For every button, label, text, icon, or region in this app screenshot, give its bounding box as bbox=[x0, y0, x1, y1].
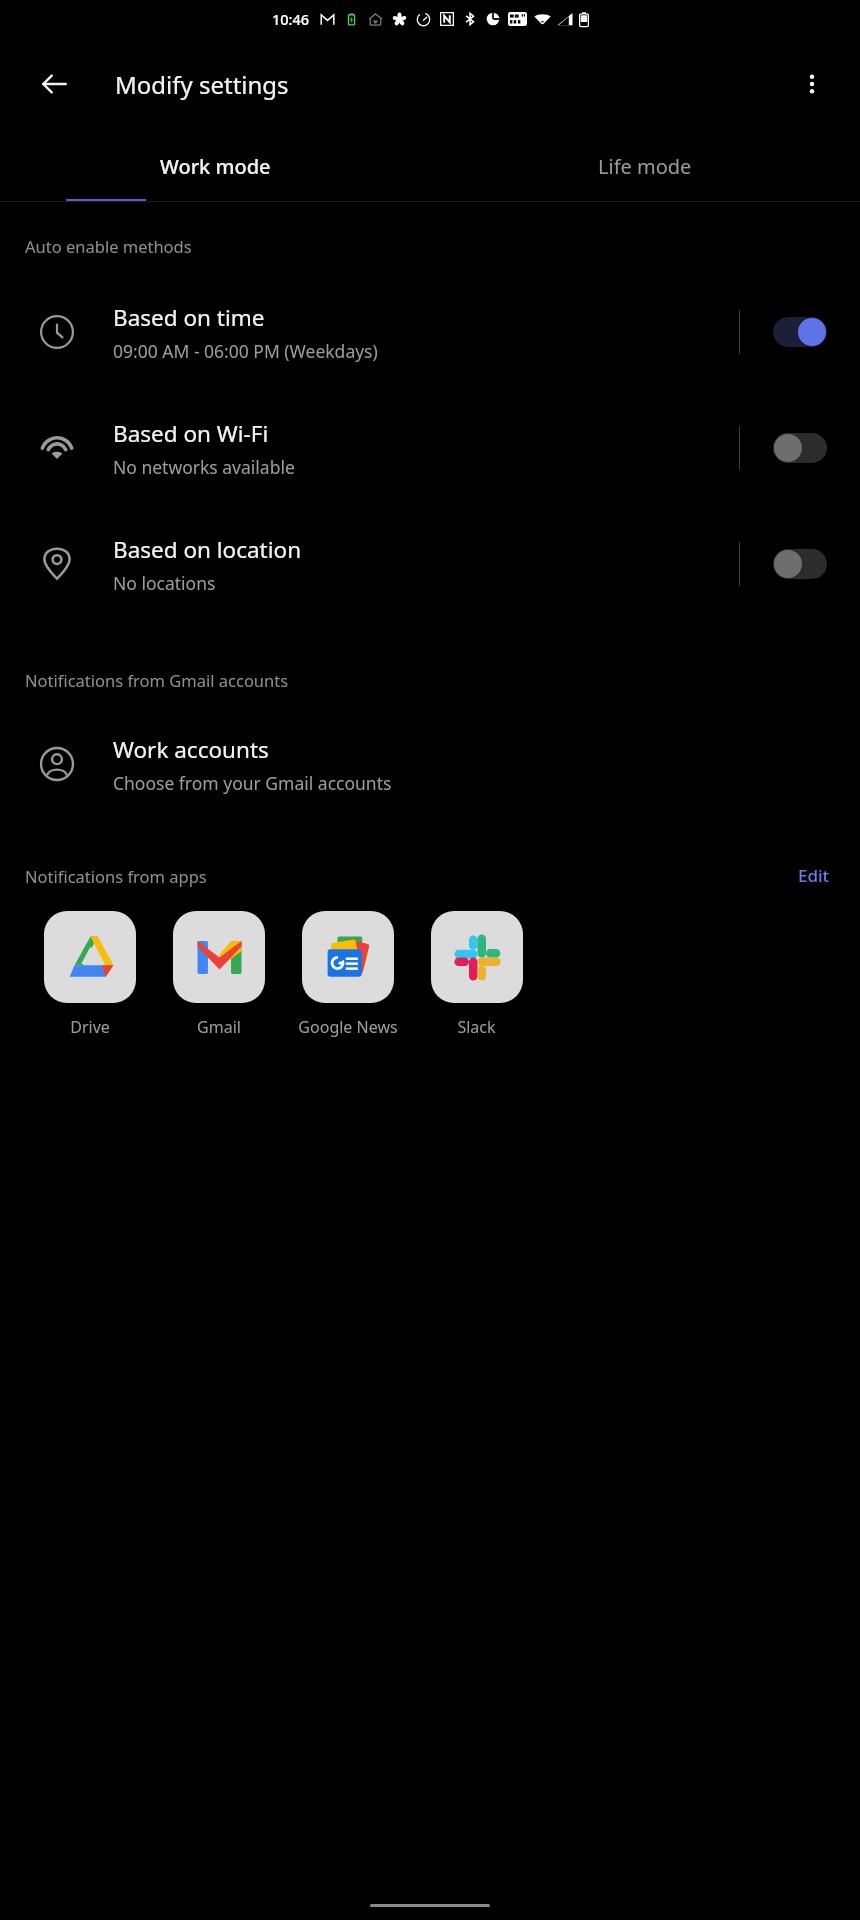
button[interactable]: Based on location bbox=[0, 516, 860, 612]
button[interactable]: Work mode bbox=[0, 130, 430, 202]
button[interactable]: Based on time bbox=[740, 284, 860, 380]
staticText: 10:46 bbox=[272, 9, 310, 29]
staticText: Google News bbox=[298, 1016, 398, 1038]
staticText: Choose from your Gmail accounts bbox=[113, 771, 392, 795]
button[interactable]: Drive bbox=[25, 911, 154, 1038]
button[interactable]: Gmail bbox=[154, 911, 283, 1038]
button[interactable]: Based on Wi-Fi bbox=[740, 400, 860, 496]
staticText: Notifications from apps bbox=[25, 865, 207, 887]
button[interactable]: Based on location bbox=[740, 516, 860, 612]
staticText: Work mode bbox=[160, 153, 271, 180]
button[interactable]: Back bbox=[30, 60, 78, 108]
staticText: No networks available bbox=[113, 455, 295, 479]
button[interactable]: Slack bbox=[412, 911, 541, 1038]
button[interactable]: Based on Wi-Fi bbox=[0, 400, 860, 496]
staticText: 09:00 AM - 06:00 PM (Weekdays) bbox=[113, 339, 378, 363]
button[interactable]: Work accounts bbox=[0, 716, 860, 812]
button[interactable]: Life mode bbox=[430, 130, 860, 202]
staticText: Gmail bbox=[197, 1016, 241, 1038]
staticText: No locations bbox=[113, 571, 216, 595]
button[interactable]: More options bbox=[788, 60, 836, 108]
button[interactable]: Google News bbox=[283, 911, 412, 1038]
staticText: Slack bbox=[457, 1016, 496, 1038]
staticText: Modify settings bbox=[115, 68, 289, 101]
staticText: Edit bbox=[798, 864, 830, 887]
staticText: Based on location bbox=[113, 534, 302, 565]
staticText: Based on Wi-Fi bbox=[113, 418, 269, 449]
staticText: Drive bbox=[70, 1016, 110, 1038]
button[interactable]: Based on time bbox=[0, 284, 860, 380]
staticText: Auto enable methods bbox=[25, 235, 192, 257]
staticText: Work accounts bbox=[113, 734, 269, 765]
staticText: Based on time bbox=[113, 302, 265, 333]
staticText: Notifications from Gmail accounts bbox=[25, 669, 289, 691]
staticText: Life mode bbox=[598, 153, 692, 180]
button[interactable]: Edit bbox=[794, 862, 834, 889]
